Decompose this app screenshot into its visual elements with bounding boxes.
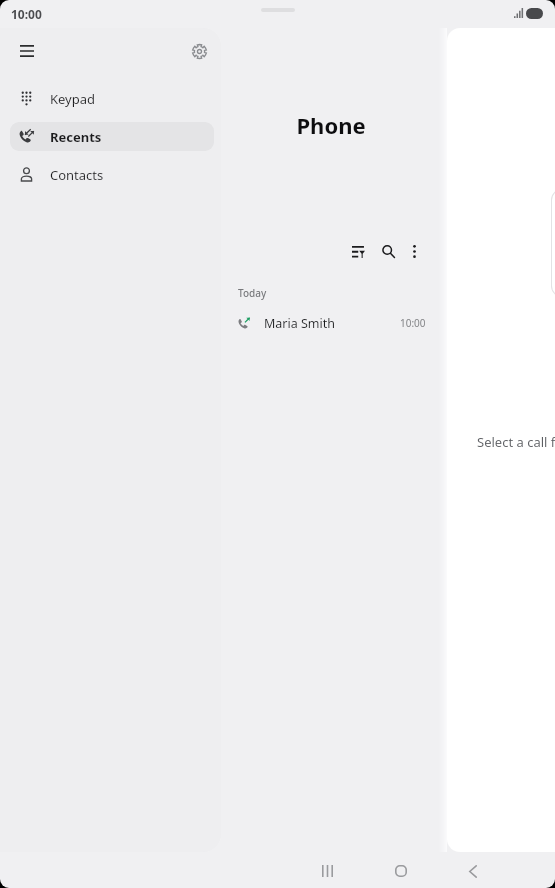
button[interactable]: Back bbox=[456, 854, 490, 888]
staticText: Contacts bbox=[50, 166, 104, 184]
staticText: Maria Smith bbox=[264, 315, 336, 332]
staticText: Today bbox=[238, 286, 267, 300]
button[interactable]: Recents bbox=[10, 122, 214, 151]
button[interactable]: Open navigation menu bbox=[9, 33, 45, 69]
button[interactable]: More options bbox=[401, 238, 427, 264]
staticText: 10:00 bbox=[400, 316, 426, 330]
button[interactable]: Search bbox=[375, 238, 401, 264]
button[interactable]: Maria Smith bbox=[221, 300, 447, 346]
button[interactable]: Keypad bbox=[10, 84, 214, 113]
button[interactable]: Recent apps bbox=[310, 854, 344, 888]
button[interactable]: Settings bbox=[181, 33, 217, 69]
staticText: Recents bbox=[50, 128, 102, 146]
button[interactable]: Sort and filter bbox=[345, 238, 371, 264]
staticText: Keypad bbox=[50, 90, 96, 108]
staticText: 10:00 bbox=[11, 6, 42, 22]
staticText: Select a call from the list bbox=[477, 433, 555, 451]
button[interactable]: Contacts bbox=[10, 160, 214, 189]
button[interactable]: Home bbox=[384, 854, 418, 888]
staticText: Phone bbox=[218, 110, 444, 140]
